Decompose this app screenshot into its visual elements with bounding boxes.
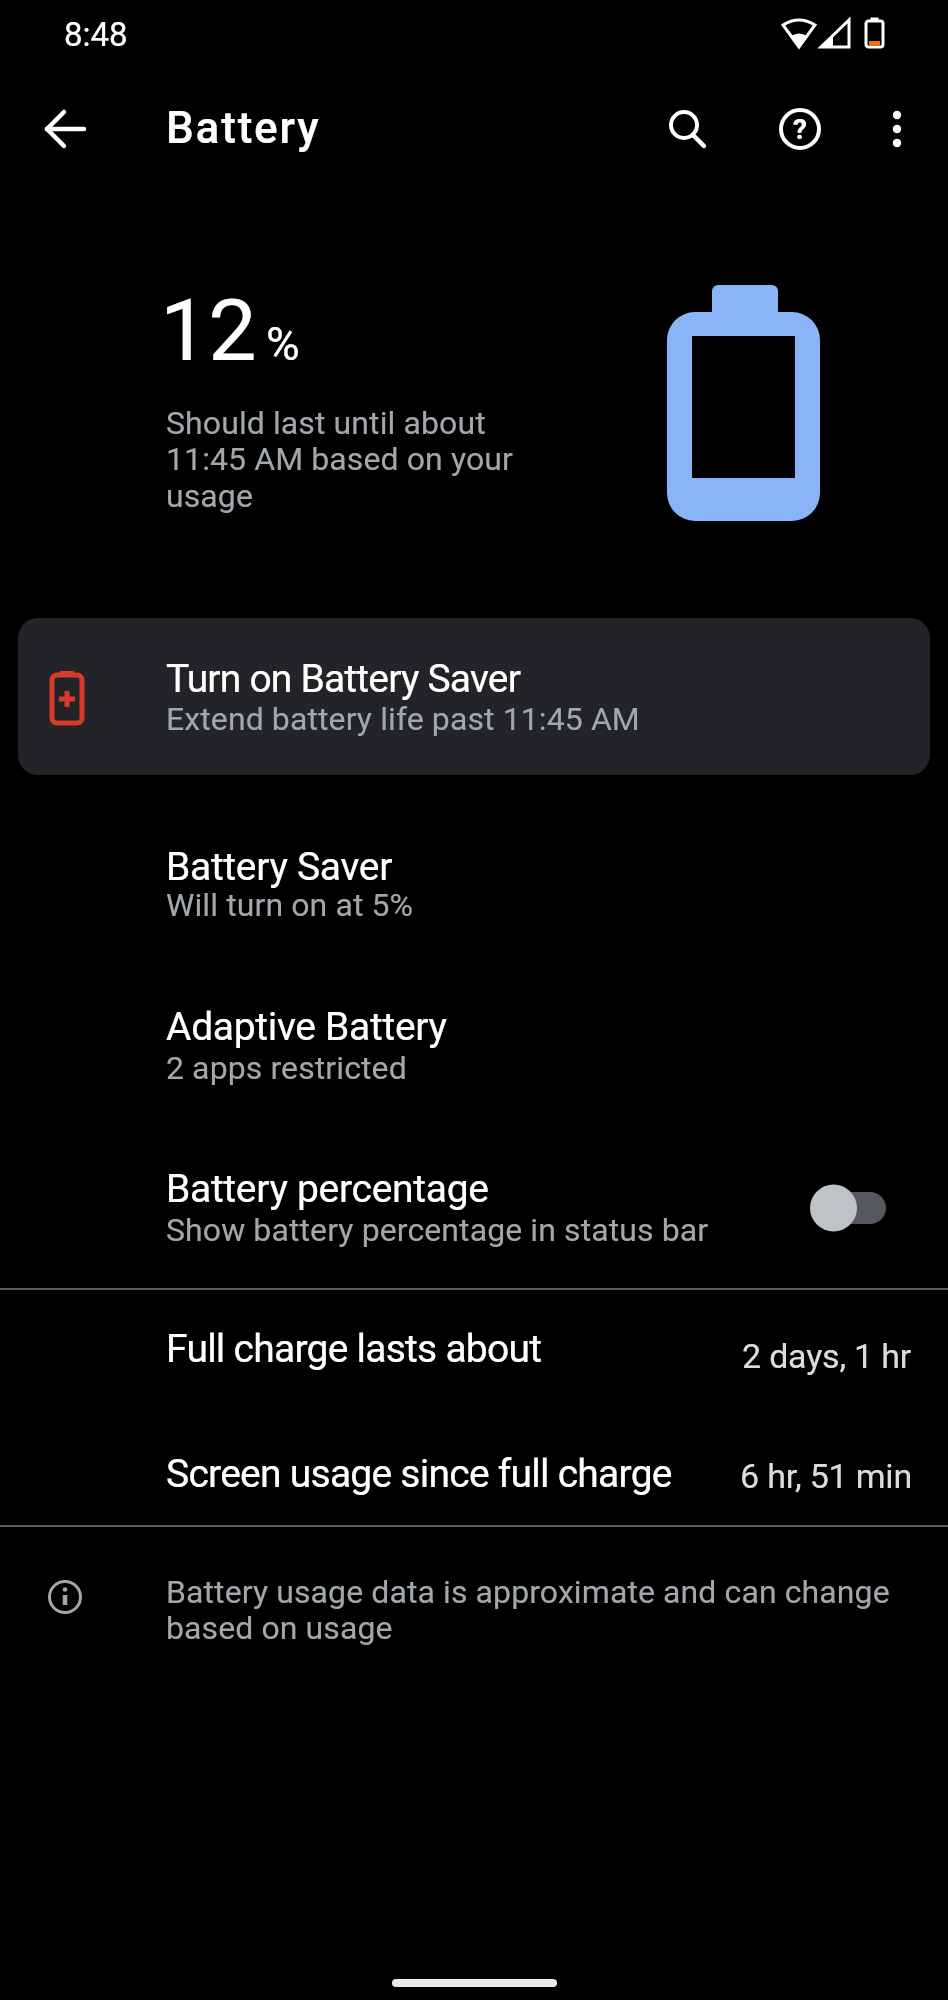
staticText: ?	[793, 113, 807, 146]
staticText: Battery usage data is approximate and ca…	[166, 1573, 890, 1647]
button[interactable]: Adaptive Battery	[0, 984, 948, 1134]
button[interactable]: Full charge lasts about	[0, 1305, 948, 1425]
staticText: 6 hr, 51 min	[740, 1456, 912, 1496]
staticText: Screen usage since full charge	[166, 1451, 672, 1497]
button[interactable]: ?	[774, 103, 826, 155]
staticText: 8:48	[64, 15, 128, 54]
button[interactable]: Turn on Battery Saver	[18, 618, 930, 775]
staticText: Full charge lasts about	[166, 1326, 542, 1372]
button[interactable]: Screen usage since full charge	[0, 1430, 948, 1550]
button[interactable]	[660, 103, 712, 155]
staticText: Turn on Battery Saver	[166, 656, 521, 702]
button[interactable]	[806, 1182, 890, 1234]
staticText: 12	[160, 280, 257, 381]
staticText: Battery Saver	[166, 844, 393, 890]
staticText: 2 apps restricted	[166, 1049, 407, 1087]
staticText: Battery	[166, 102, 321, 154]
staticText: Will turn on at 5%	[166, 886, 414, 924]
button[interactable]	[871, 103, 923, 155]
staticText: %	[266, 317, 300, 371]
button[interactable]: Battery percentage	[0, 1146, 948, 1296]
staticText: Should last until about 11:45 AM based o…	[166, 404, 513, 515]
button[interactable]: Battery Saver	[0, 820, 948, 970]
staticText: Adaptive Battery	[166, 1004, 447, 1050]
staticText: Show battery percentage in status bar	[166, 1211, 709, 1249]
button[interactable]	[40, 103, 92, 155]
staticText: Extend battery life past 11:45 AM	[166, 700, 640, 738]
staticText: Battery percentage	[166, 1166, 489, 1212]
staticText: 2 days, 1 hr	[742, 1336, 912, 1376]
